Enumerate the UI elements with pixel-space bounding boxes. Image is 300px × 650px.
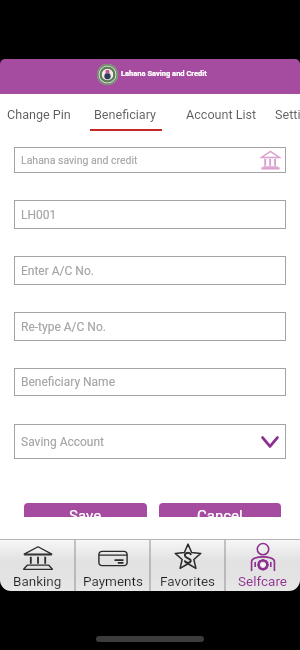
button[interactable]: Re-type A/C No. (14, 312, 286, 341)
button[interactable]: Change Pin (2, 101, 76, 128)
button[interactable]: LH001 (14, 200, 286, 229)
button[interactable]: Saving Account (14, 424, 286, 459)
staticText: Saving Account (21, 435, 105, 449)
staticText: Beneficiary Name (21, 375, 116, 389)
button[interactable]: Beneficiary (89, 101, 161, 128)
button[interactable]: Account List (181, 101, 262, 128)
staticText: Enter A/C No. (21, 264, 94, 278)
button[interactable]: Cancel (159, 503, 281, 517)
other: Bank (261, 150, 280, 170)
staticText: Re-type A/C No. (21, 320, 106, 334)
staticText: Payments (83, 573, 143, 589)
staticText: Settings (275, 107, 300, 122)
button[interactable]: Lahana saving and credit (14, 147, 286, 173)
staticText: Lahana Saving and Credit (121, 69, 207, 78)
staticText: Beneficiary (94, 107, 156, 122)
button[interactable]: Selfcare (225, 539, 300, 591)
other: Open dropdown (261, 436, 279, 448)
button[interactable]: Enter A/C No. (14, 256, 286, 285)
staticText: Cancel (197, 507, 243, 517)
other: Bank logo (97, 64, 118, 85)
button[interactable]: Settings (270, 101, 300, 128)
staticText: LH001 (21, 208, 57, 222)
staticText: Banking (13, 573, 62, 589)
staticText: Save (69, 507, 102, 517)
staticText: Account List (186, 107, 257, 122)
button[interactable]: Payments (75, 539, 150, 591)
staticText: Change Pin (7, 107, 71, 122)
staticText: Favorites (160, 573, 216, 589)
button[interactable]: Save (24, 503, 147, 517)
button[interactable]: Favorites (150, 539, 225, 591)
staticText: Lahana saving and credit (21, 154, 138, 166)
button[interactable]: Beneficiary Name (14, 368, 286, 396)
button[interactable]: Banking (0, 539, 75, 591)
staticText: Selfcare (238, 573, 288, 589)
